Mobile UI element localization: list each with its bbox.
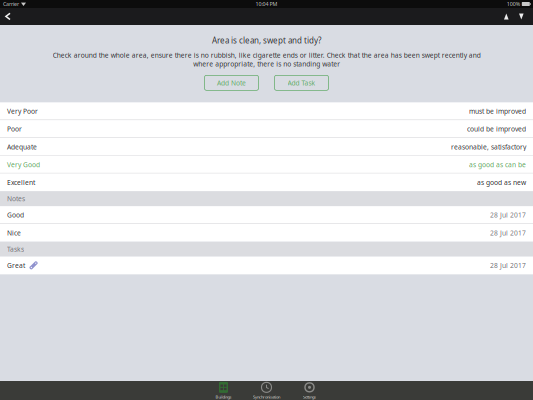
staticText: Nice [7, 228, 21, 237]
staticText: Very Poor [7, 107, 38, 116]
button[interactable]: Good [0, 206, 533, 224]
staticText: reasonable, satisfactory [451, 142, 526, 151]
staticText: 28 Jul 2017 [490, 228, 526, 237]
staticText: 10:04 PM [255, 0, 277, 8]
staticText: Notes [7, 194, 25, 203]
button[interactable]: Settings [288, 381, 331, 399]
staticText: Settings [303, 394, 316, 400]
staticText: Good [7, 211, 24, 219]
staticText: as good as can be [469, 160, 526, 169]
button[interactable]: Next item [514, 9, 529, 23]
staticText: Buildings [215, 394, 231, 400]
staticText: Very Good [7, 160, 40, 169]
staticText: Check around the whole area, ensure ther… [52, 51, 480, 68]
button[interactable]: Adequate [0, 138, 533, 156]
button[interactable]: Great [0, 256, 533, 274]
button[interactable]: Previous item [499, 9, 514, 23]
staticText: Adequate [7, 142, 37, 151]
staticText: Area is clean, swept and tidy? [212, 35, 321, 46]
staticText: Excellent [7, 178, 35, 187]
button[interactable]: Excellent [0, 173, 533, 191]
button[interactable]: Add Note [204, 75, 258, 90]
button[interactable]: Nice [0, 224, 533, 242]
staticText: Tasks [7, 245, 24, 254]
staticText: could be improved [467, 125, 526, 133]
staticText: Synchronisation [253, 394, 280, 400]
button[interactable]: Poor [0, 120, 533, 138]
staticText: 28 Jul 2017 [490, 211, 526, 219]
staticText: Add Task [287, 78, 315, 87]
staticText: Great [7, 261, 25, 270]
staticText: must be improved [469, 107, 526, 116]
staticText: Poor [7, 125, 22, 133]
button[interactable]: Buildings [202, 381, 245, 399]
button[interactable]: Back [4, 8, 19, 24]
staticText: 100% [507, 0, 520, 8]
button[interactable]: Synchronisation [245, 381, 288, 399]
staticText: 28 Jul 2017 [490, 261, 526, 270]
staticText: as good as new [477, 178, 526, 187]
button[interactable]: Very Good [0, 156, 533, 173]
staticText: Add Note [217, 78, 246, 87]
button[interactable]: Add Task [274, 75, 328, 90]
button[interactable]: Very Poor [0, 102, 533, 120]
staticText: Carrier [3, 0, 19, 8]
